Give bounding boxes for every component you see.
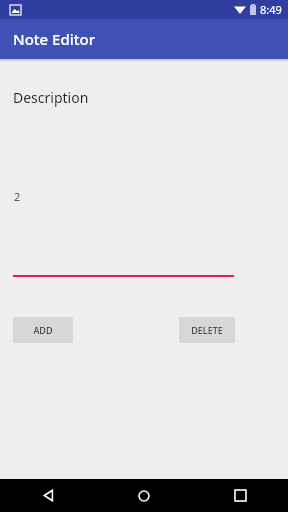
button[interactable]: Recent apps bbox=[192, 479, 288, 512]
button[interactable]: Back bbox=[0, 479, 96, 512]
staticText: Description bbox=[13, 88, 89, 107]
button[interactable]: DELETE bbox=[179, 317, 235, 343]
staticText: 8:49 bbox=[260, 2, 282, 17]
button[interactable]: Home bbox=[96, 479, 192, 512]
staticText: ADD bbox=[33, 324, 53, 336]
staticText: 2 bbox=[14, 189, 21, 204]
staticText: Note Editor bbox=[13, 29, 96, 49]
staticText: DELETE bbox=[191, 324, 223, 336]
button[interactable]: ADD bbox=[13, 317, 73, 343]
